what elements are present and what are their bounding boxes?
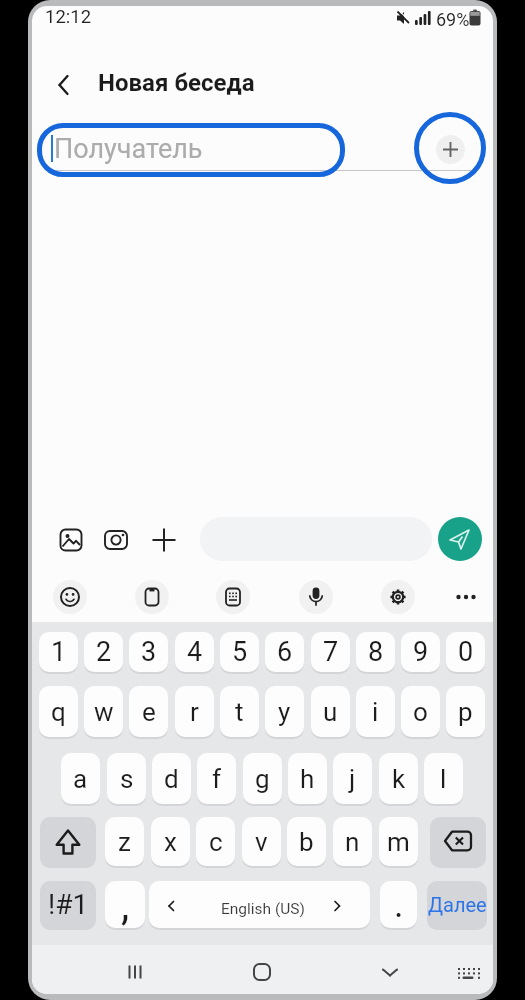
button[interactable]: a [61, 753, 100, 804]
button[interactable]: u [311, 686, 350, 737]
button[interactable]: l [424, 753, 463, 804]
button[interactable]: 6 [265, 632, 304, 672]
button[interactable]: s [107, 753, 146, 804]
button[interactable]: 8 [356, 632, 395, 672]
button[interactable]: x [151, 817, 190, 866]
staticText: u [323, 697, 338, 727]
staticText: 6 [277, 636, 293, 668]
button[interactable] [119, 956, 151, 988]
button[interactable] [104, 528, 128, 552]
staticText: 8 [368, 636, 384, 668]
staticText: t [235, 697, 244, 727]
button[interactable] [216, 580, 250, 614]
staticText: n [345, 827, 360, 857]
button[interactable] [374, 956, 406, 988]
button[interactable]: e [129, 686, 168, 737]
button[interactable]: !#1 [40, 881, 96, 928]
button[interactable]: w [84, 686, 123, 737]
button[interactable]: d [152, 753, 191, 804]
staticText: 69% [436, 9, 470, 30]
staticText: 9 [413, 636, 429, 668]
staticText: o [413, 697, 428, 727]
button[interactable] [53, 580, 87, 614]
staticText: m [387, 827, 410, 857]
button[interactable] [135, 580, 169, 614]
button[interactable] [59, 528, 83, 552]
staticText: f [212, 764, 222, 794]
staticText: a [73, 764, 88, 794]
button[interactable] [436, 135, 465, 164]
button[interactable]: h [288, 753, 327, 804]
staticText: 4 [187, 636, 203, 668]
button[interactable]: q [39, 686, 78, 737]
button[interactable]: 4 [175, 632, 214, 672]
button[interactable] [381, 580, 415, 614]
button[interactable]: . [380, 881, 417, 928]
staticText: z [118, 827, 131, 857]
staticText: q [51, 697, 66, 727]
staticText: !#1 [48, 888, 89, 921]
button[interactable]: 2 [84, 632, 123, 672]
staticText: , [121, 881, 130, 928]
button[interactable]: v [242, 817, 281, 866]
staticText: c [209, 827, 223, 857]
button[interactable]: y [265, 686, 304, 737]
staticText: 12:12 [45, 6, 92, 28]
staticText: 2 [96, 636, 112, 668]
button[interactable]: 3 [129, 632, 168, 672]
button[interactable]: Далее [427, 881, 487, 928]
button[interactable]: n [333, 817, 372, 866]
button[interactable]: 0 [446, 632, 485, 672]
staticText: 5 [232, 636, 248, 668]
button[interactable] [438, 517, 482, 561]
button[interactable] [449, 580, 483, 614]
button[interactable]: , [105, 881, 145, 928]
button[interactable] [299, 580, 333, 614]
button[interactable] [53, 74, 75, 96]
button[interactable]: z [105, 817, 144, 866]
button[interactable]: 9 [401, 632, 440, 672]
staticText: e [142, 697, 156, 727]
staticText: h [300, 764, 315, 794]
button[interactable]: i [356, 686, 395, 737]
staticText: Получатель [54, 133, 203, 165]
staticText: p [458, 697, 473, 727]
button[interactable]: 5 [220, 632, 259, 672]
button[interactable]: f [197, 753, 236, 804]
button[interactable]: English (US) [149, 881, 370, 928]
button[interactable]: b [287, 817, 326, 866]
button[interactable] [452, 958, 484, 990]
staticText: . [394, 884, 404, 926]
button[interactable] [40, 817, 96, 866]
staticText: v [255, 827, 268, 857]
button[interactable]: o [401, 686, 440, 737]
button[interactable] [37, 123, 345, 177]
button[interactable]: 7 [311, 632, 350, 672]
button[interactable]: t [220, 686, 259, 737]
button[interactable]: 1 [39, 632, 78, 672]
staticText: d [164, 764, 179, 794]
staticText: w [94, 697, 114, 727]
staticText: b [299, 827, 314, 857]
staticText: 3 [141, 636, 157, 668]
button[interactable]: g [243, 753, 282, 804]
staticText: i [372, 697, 379, 727]
button[interactable]: c [196, 817, 235, 866]
button[interactable]: p [446, 686, 485, 737]
button[interactable]: r [175, 686, 214, 737]
staticText: English (US) [221, 900, 305, 918]
staticText: j [349, 764, 356, 794]
staticText: 0 [458, 636, 474, 668]
button[interactable]: j [333, 753, 372, 804]
staticText: x [164, 827, 177, 857]
staticText: l [440, 764, 447, 794]
button[interactable] [152, 528, 176, 552]
button[interactable] [246, 956, 278, 988]
staticText: k [392, 764, 406, 794]
button[interactable] [430, 817, 486, 866]
staticText: 7 [323, 636, 339, 668]
staticText: Далее [428, 893, 487, 916]
button[interactable]: m [379, 817, 418, 866]
button[interactable]: k [379, 753, 418, 804]
